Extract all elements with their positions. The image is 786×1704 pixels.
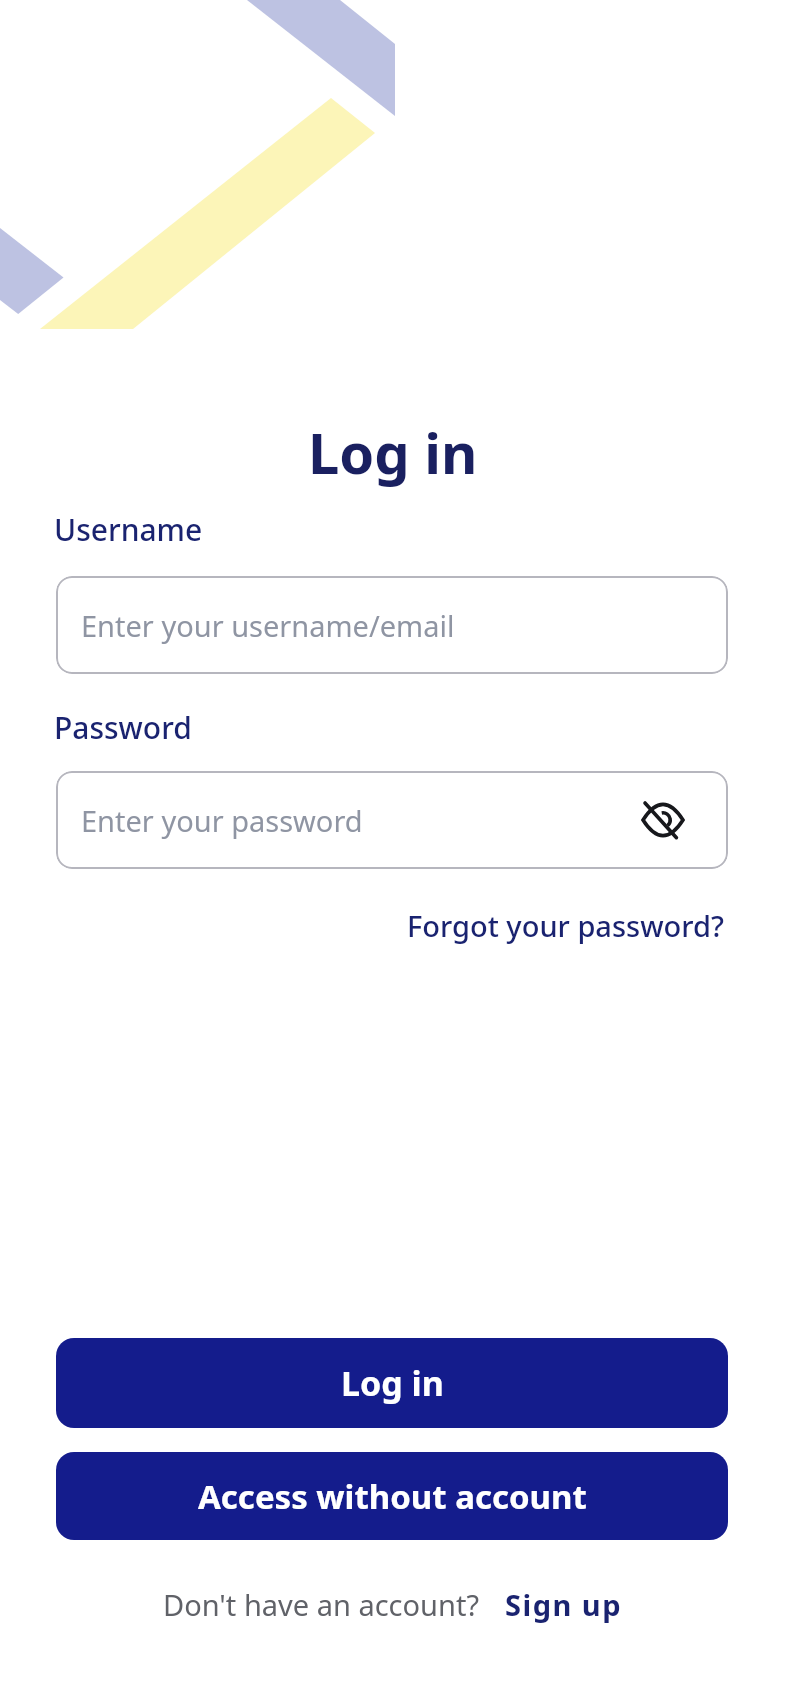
button[interactable]: Enter your username/email xyxy=(56,576,728,674)
button[interactable]: Log in xyxy=(56,1338,728,1428)
staticText: Username xyxy=(54,509,203,550)
staticText: Enter your password xyxy=(81,801,363,840)
button[interactable]: Sign up xyxy=(505,1585,623,1624)
staticText: Password xyxy=(54,707,192,748)
staticText: Access without account xyxy=(198,1474,587,1519)
button[interactable]: Enter your password xyxy=(56,771,728,869)
button[interactable]: Access without account xyxy=(56,1452,728,1540)
staticText: Log in xyxy=(308,414,478,490)
button[interactable]: Forgot your password? xyxy=(407,906,724,945)
staticText: Don't have an account? xyxy=(163,1585,479,1624)
staticText: Enter your username/email xyxy=(81,606,455,645)
staticText: Log in xyxy=(341,1360,444,1406)
button[interactable] xyxy=(642,803,684,837)
